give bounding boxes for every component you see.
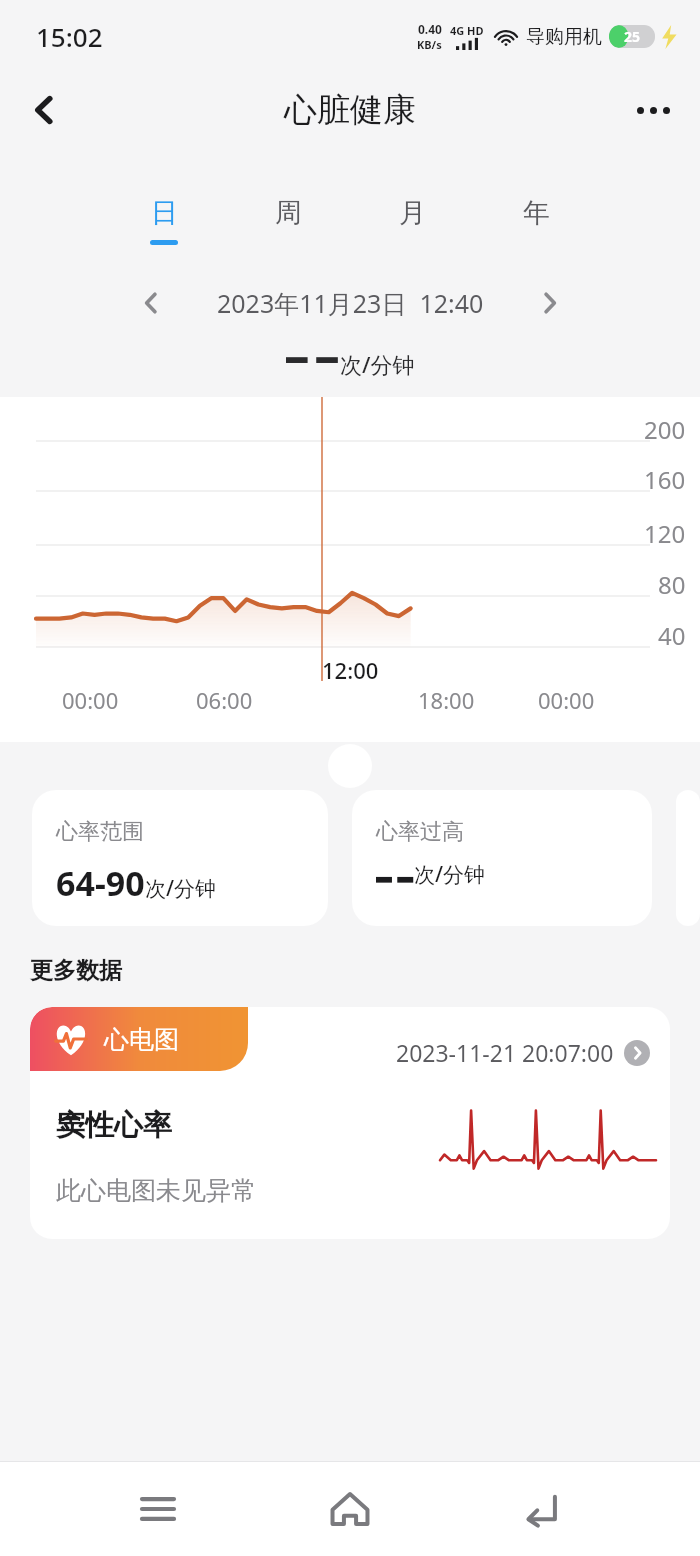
- staticText: 12:00: [322, 655, 379, 685]
- staticText: 次/分钟: [414, 860, 486, 889]
- staticText: 次/分钟: [145, 874, 217, 903]
- staticText: 心电图: [104, 1024, 179, 1055]
- button[interactable]: More options: [622, 79, 684, 141]
- staticText: 次/分钟: [340, 349, 415, 379]
- button[interactable]: Previous day: [123, 275, 179, 331]
- button[interactable]: Next day: [522, 275, 578, 331]
- staticText: 25: [624, 27, 641, 46]
- staticText: 周: [275, 196, 302, 230]
- staticText: 06:00: [196, 685, 253, 715]
- button[interactable]: Home: [312, 1471, 388, 1547]
- staticText: 160: [644, 463, 686, 496]
- staticText: 00:00: [62, 685, 119, 715]
- button[interactable]: Back: [14, 79, 76, 141]
- button[interactable]: 周: [226, 196, 350, 245]
- button[interactable]: 心电图: [30, 1007, 670, 1239]
- staticText: 2023-11-21 20:07:00: [396, 1037, 614, 1068]
- staticText: 00:00: [538, 685, 595, 715]
- staticText: 窦性心率: [56, 1107, 172, 1144]
- staticText: 更多数据: [30, 956, 122, 985]
- staticText: 0.40: [418, 21, 442, 37]
- button[interactable]: 日: [102, 196, 226, 245]
- button[interactable]: 心率过高: [352, 790, 652, 926]
- staticText: 日: [151, 196, 178, 230]
- staticText: 40: [658, 619, 686, 652]
- staticText: 心率过高: [376, 818, 464, 846]
- staticText: 200: [644, 413, 686, 446]
- button[interactable]: 年: [474, 196, 598, 245]
- staticText: 80: [658, 568, 686, 601]
- staticText: 15:02: [36, 19, 103, 54]
- staticText: 2023年11月23日 12:40: [217, 286, 484, 320]
- staticText: 64-90: [56, 860, 145, 906]
- staticText: 年: [523, 196, 550, 230]
- staticText: 此心电图未见异常: [56, 1175, 256, 1206]
- staticText: 18:00: [418, 685, 475, 715]
- staticText: 120: [644, 517, 686, 550]
- button[interactable]: 月: [350, 196, 474, 245]
- button[interactable]: 心率范围: [32, 790, 328, 926]
- staticText: 心脏健康: [284, 89, 416, 131]
- button[interactable]: Recent apps: [120, 1471, 196, 1547]
- button[interactable]: Back: [504, 1471, 580, 1547]
- staticText: 导购用机: [526, 25, 602, 49]
- staticText: 4G HD: [450, 23, 484, 38]
- staticText: 心率范围: [56, 818, 144, 846]
- staticText: KB/s: [417, 37, 442, 52]
- staticText: 月: [399, 196, 426, 230]
